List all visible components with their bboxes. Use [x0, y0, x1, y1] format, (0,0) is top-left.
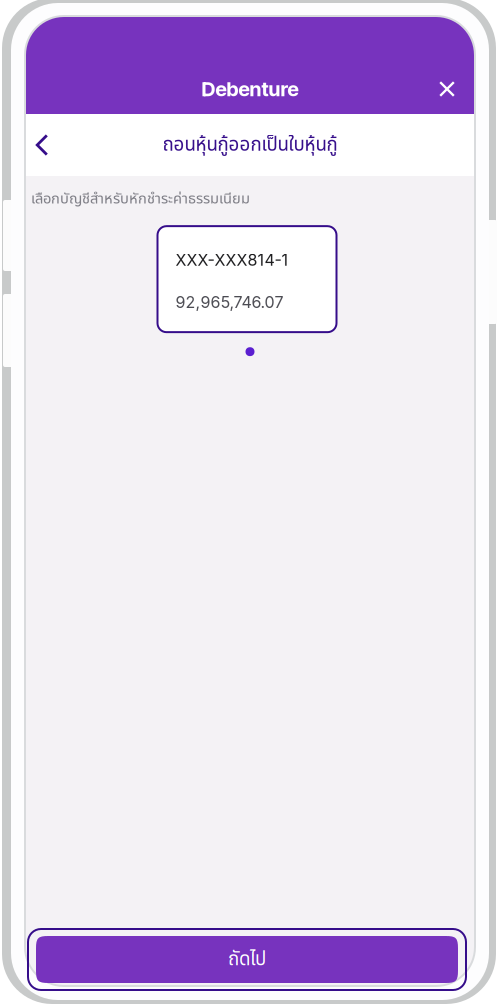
- staticText: ถัดไป: [228, 945, 266, 974]
- staticText: 92,965,746.07: [175, 292, 283, 312]
- button[interactable]: ถัดไป: [28, 929, 466, 990]
- staticText: เลือกบัญชีสำหรับหักชำระค่าธรรมเนียม: [31, 188, 250, 210]
- button[interactable]: XXX-XXX814-1: [157, 226, 336, 332]
- staticText: XXX-XXX814-1: [175, 250, 288, 270]
- staticText: ถอนหุ้นกู้ออกเป็นใบหุ้นกู้: [162, 131, 337, 159]
- button[interactable]: Page 1: [245, 347, 254, 356]
- staticText: Debenture: [201, 77, 298, 101]
- button[interactable]: Back: [27, 123, 57, 167]
- button[interactable]: Close: [425, 67, 469, 111]
